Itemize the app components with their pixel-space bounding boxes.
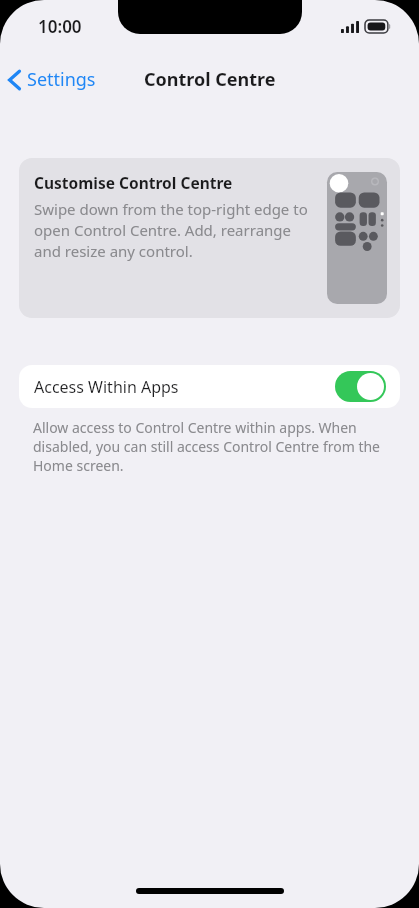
button[interactable]: Back: [0, 63, 104, 96]
staticText: Control Centre: [144, 67, 276, 92]
staticText: Swipe down from the top-right edge to op…: [34, 199, 319, 262]
staticText: Settings: [27, 67, 96, 92]
staticText: Allow access to Control Centre within ap…: [33, 418, 386, 475]
other: Back: [8, 69, 21, 91]
button[interactable]: Access Within Apps: [19, 365, 400, 408]
button[interactable]: Customise Control Centre: [19, 158, 400, 318]
staticText: Customise Control Centre: [34, 172, 233, 193]
staticText: Access Within Apps: [34, 376, 335, 398]
staticText: 10:00: [38, 15, 82, 38]
button[interactable]: Access Within Apps toggle, on: [335, 371, 386, 402]
